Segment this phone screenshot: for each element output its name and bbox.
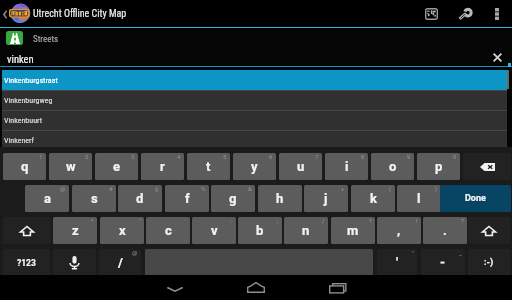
button[interactable]: ? (423, 217, 467, 244)
button[interactable]: 5 (187, 153, 230, 180)
button[interactable]: : (192, 217, 236, 244)
button[interactable]: " (377, 249, 417, 276)
button[interactable]: More options (487, 4, 506, 24)
staticText: b (256, 223, 264, 238)
staticText: o (389, 159, 397, 174)
staticText: @ (60, 185, 66, 192)
button[interactable]: Delete (463, 153, 511, 180)
button[interactable]: ) (397, 185, 441, 212)
button[interactable]: + (304, 185, 348, 212)
staticText: 5 (223, 153, 227, 160)
button[interactable]: 2 (49, 153, 92, 180)
staticText: p (435, 159, 443, 174)
staticText: ) (435, 185, 438, 192)
button[interactable]: ' (146, 217, 190, 244)
staticText: 4 (177, 153, 181, 160)
button[interactable]: ? (331, 217, 375, 244)
button[interactable]: Back (153, 278, 197, 300)
staticText: $ (155, 185, 159, 192)
button[interactable]: 9 (371, 153, 414, 180)
staticText: _ (459, 249, 462, 256)
button[interactable]: Vinkenbuurt (2, 110, 507, 130)
button[interactable]: ( (351, 185, 395, 212)
staticText: j (324, 191, 328, 206)
button[interactable]: / (284, 217, 328, 244)
staticText: q (21, 159, 29, 174)
button[interactable]: Done (440, 185, 511, 212)
button[interactable]: Clear text (488, 49, 506, 66)
button[interactable]: 1 (3, 153, 46, 180)
button[interactable]: % (165, 185, 209, 212)
button[interactable]: Voice input (53, 249, 96, 276)
staticText: i (345, 159, 349, 174)
staticText: / (322, 217, 325, 224)
button[interactable]: " (100, 217, 144, 244)
button[interactable]: # (72, 185, 116, 212)
button[interactable]: @ (99, 249, 141, 276)
staticText: Utrecht Offline City Map (33, 8, 127, 20)
staticText: e (113, 159, 121, 174)
button[interactable]: Navigate up (0, 5, 9, 23)
button[interactable]: 7 (279, 153, 322, 180)
staticText: - (440, 255, 446, 270)
staticText: s (91, 191, 98, 206)
button[interactable]: Map (421, 4, 441, 24)
staticText: Vinkenbuurt (4, 116, 43, 125)
button[interactable]: 4 (141, 153, 184, 180)
button[interactable]: Space (145, 249, 373, 276)
staticText: 3 (131, 153, 135, 160)
staticText: 0 (453, 153, 457, 160)
staticText: r (160, 159, 165, 174)
staticText: v (211, 223, 218, 238)
button[interactable]: & (211, 185, 255, 212)
button[interactable]: Shift (3, 217, 51, 244)
button[interactable]: Vinkenerf (2, 130, 507, 150)
button[interactable]: _ (421, 249, 465, 276)
button[interactable]: Settings (455, 4, 475, 24)
staticText: :-) (484, 257, 494, 268)
staticText: Vinkenburgstraat (4, 76, 58, 85)
staticText: ( (389, 185, 392, 192)
staticText: c (165, 223, 172, 238)
button[interactable]: Home (234, 275, 278, 300)
button[interactable]: Vinkenburgstraat (2, 70, 507, 90)
staticText: ? (461, 217, 464, 224)
button[interactable]: @ (25, 185, 69, 212)
button[interactable]: :-) (468, 249, 510, 276)
button[interactable]: Streets (0, 29, 512, 48)
staticText: y (251, 159, 258, 174)
button[interactable]: * (53, 217, 97, 244)
staticText: . (443, 223, 447, 238)
button[interactable]: 6 (233, 153, 276, 180)
button[interactable]: 3 (95, 153, 138, 180)
button[interactable]: Recent apps (315, 275, 359, 300)
button[interactable]: $ (118, 185, 162, 212)
staticText: ? (369, 217, 372, 224)
staticText: Streets (33, 34, 59, 45)
button[interactable]: 8 (325, 153, 368, 180)
staticText: vinken (7, 53, 34, 65)
staticText: ?123 (17, 258, 36, 268)
staticText: Vinkenerf (4, 136, 35, 145)
staticText: ! (416, 217, 418, 224)
button[interactable]: ; (238, 217, 282, 244)
button[interactable]: Shift (468, 217, 510, 244)
button[interactable]: Vinkenburgweg (2, 90, 507, 110)
staticText: ' (185, 217, 187, 224)
staticText: " (139, 217, 141, 224)
staticText: 8 (361, 153, 365, 160)
staticText: z (72, 223, 79, 238)
button[interactable]: ! (377, 217, 421, 244)
staticText: Vinkenburgweg (4, 96, 53, 105)
button[interactable]: - (258, 185, 302, 212)
staticText: - (297, 185, 299, 192)
staticText: k (370, 191, 377, 206)
button[interactable]: 0 (417, 153, 460, 180)
button[interactable]: ?123 (3, 249, 50, 276)
staticText: " (412, 249, 414, 256)
staticText: * (91, 217, 94, 224)
staticText: w (66, 159, 76, 174)
staticText: h (276, 191, 284, 206)
staticText: / (118, 255, 123, 270)
staticText: , (397, 223, 401, 238)
